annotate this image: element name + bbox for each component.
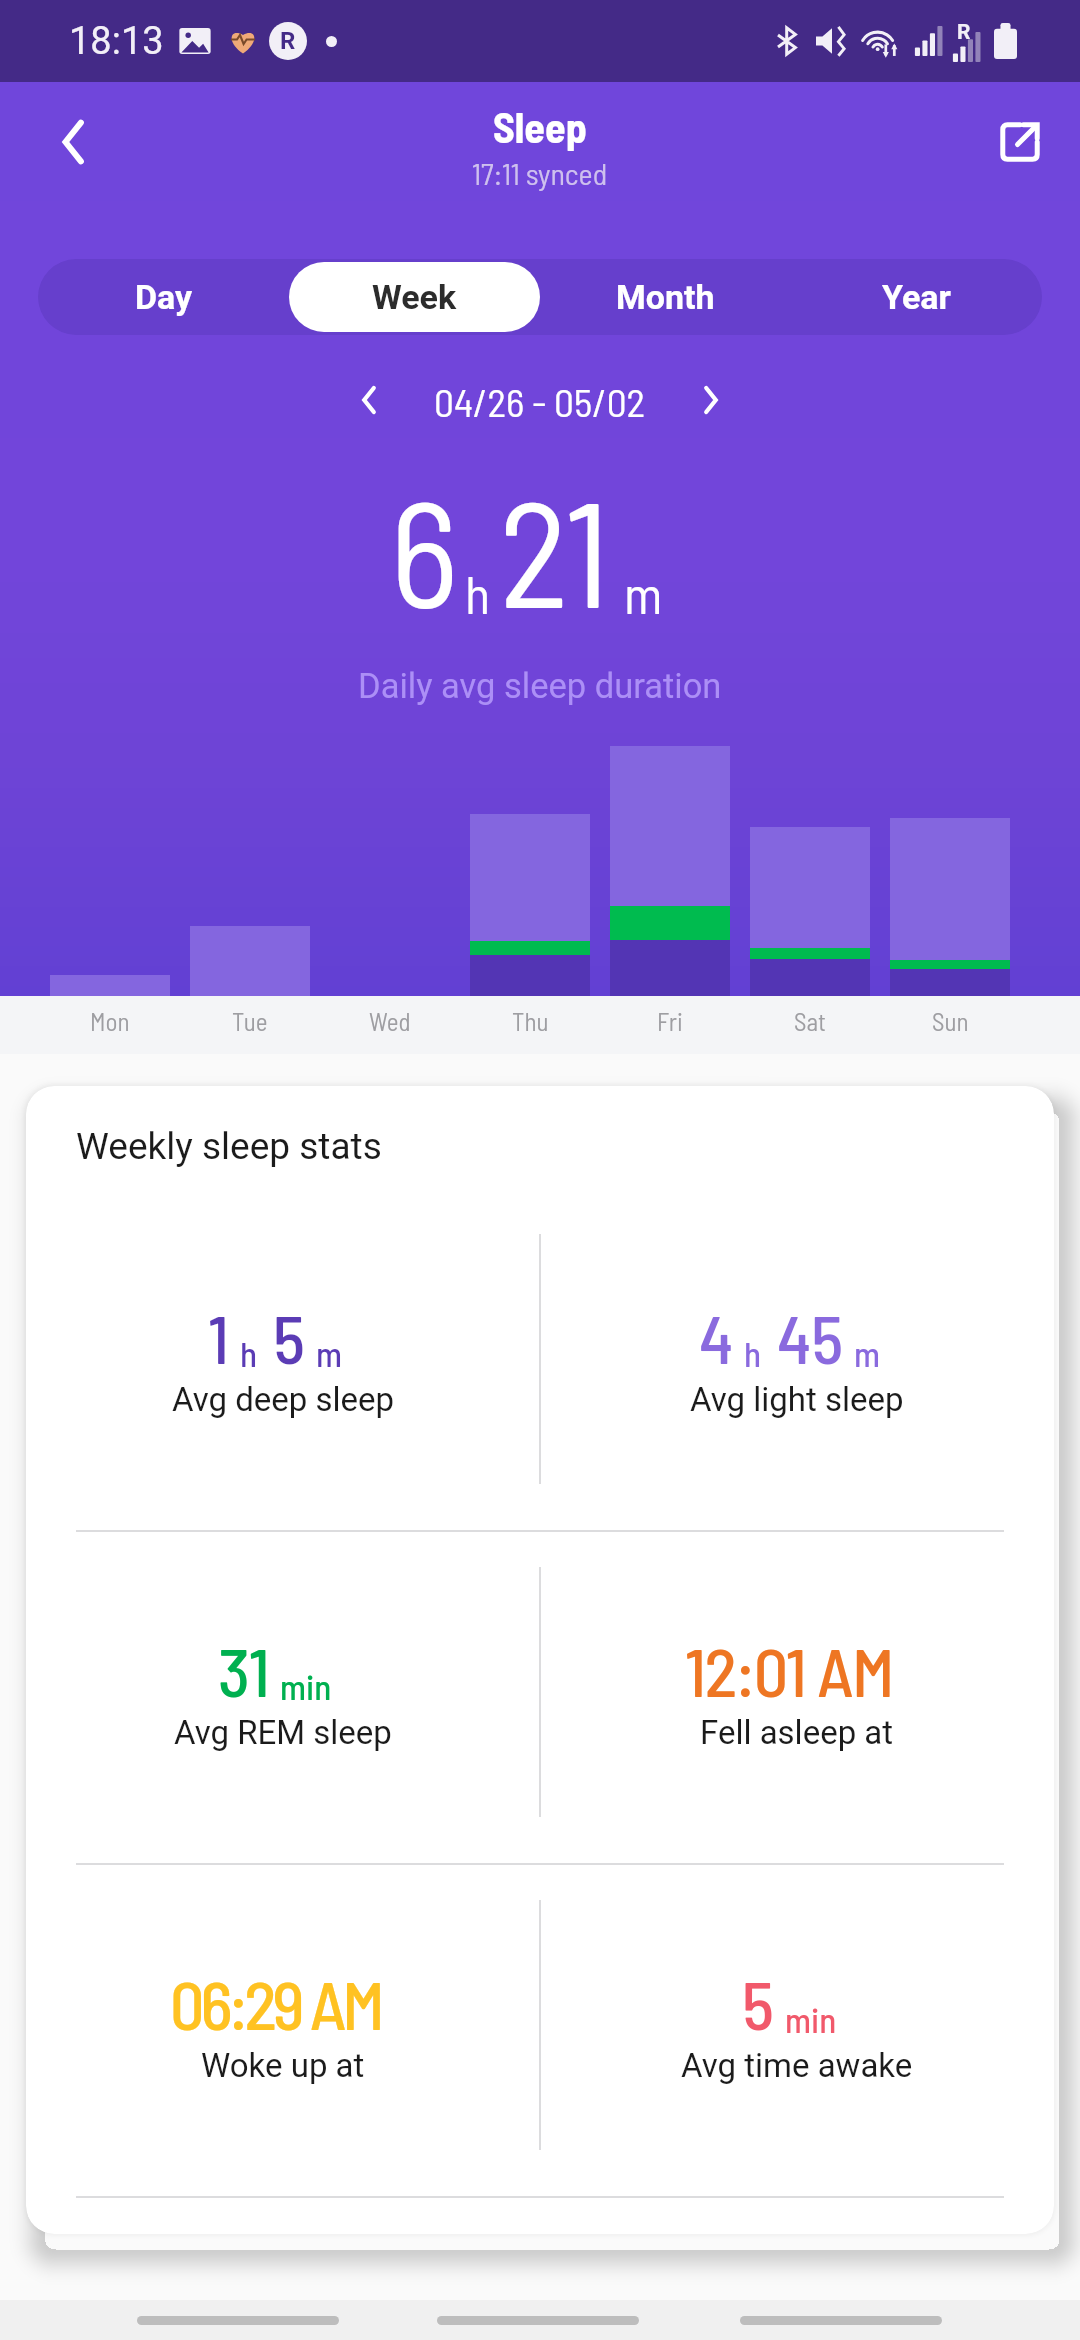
staticText: Sleep	[493, 101, 588, 151]
button[interactable]: Next week	[676, 365, 746, 435]
staticText: 17:11 synced	[472, 155, 608, 191]
button[interactable]: Week	[289, 262, 540, 332]
button[interactable]: 31	[26, 1532, 540, 1863]
button[interactable]: Recent apps	[137, 2300, 339, 2340]
button[interactable]: Home	[437, 2300, 639, 2340]
button[interactable]: 12:01 AM	[540, 1532, 1054, 1863]
staticText: m	[624, 562, 663, 624]
staticText: 4	[699, 1296, 734, 1378]
button[interactable]: Back	[28, 97, 118, 187]
staticText: 6	[390, 460, 459, 638]
staticText: Wed	[369, 1006, 411, 1036]
button[interactable]: Month	[540, 262, 791, 332]
staticText: 1	[208, 1296, 230, 1378]
staticText: 06:29 AM	[170, 1962, 381, 2044]
staticText: Thu	[512, 1006, 549, 1036]
staticText: Avg light sleep	[690, 1380, 904, 1419]
staticText: Month	[616, 277, 715, 317]
staticText: min	[280, 1665, 332, 1707]
staticText: m	[316, 1332, 342, 1374]
button[interactable]: Back	[740, 2300, 942, 2340]
staticText: Sun	[932, 1006, 969, 1036]
staticText: 5	[742, 1962, 775, 2044]
button[interactable]: Year	[791, 262, 1042, 332]
staticText: 31	[218, 1629, 270, 1711]
staticText: Avg REM sleep	[174, 1713, 392, 1752]
staticText: 45	[777, 1296, 844, 1378]
staticText: Year	[882, 277, 951, 317]
staticText: Weekly sleep stats	[76, 1125, 382, 1168]
button[interactable]: 5	[540, 1865, 1054, 2196]
staticText: 04/26 - 05/02	[434, 377, 646, 424]
staticText: Day	[135, 277, 193, 317]
staticText: 12:01 AM	[685, 1629, 893, 1711]
staticText: h	[240, 1332, 258, 1374]
staticText: Avg deep sleep	[172, 1380, 395, 1419]
staticText: h	[465, 562, 491, 624]
staticText: Avg time awake	[681, 2046, 913, 2085]
staticText: h	[744, 1332, 762, 1374]
staticText: Fell asleep at	[700, 1713, 894, 1752]
staticText: Daily avg sleep duration	[358, 666, 722, 706]
staticText: R	[957, 20, 971, 45]
button[interactable]: 1	[26, 1199, 540, 1530]
button[interactable]: Open in new	[975, 97, 1065, 187]
staticText: min	[785, 1998, 837, 2040]
staticText: R	[280, 27, 296, 55]
staticText: Mon	[90, 1006, 130, 1036]
button[interactable]: Previous week	[334, 365, 404, 435]
staticText: Tue	[232, 1006, 268, 1036]
button[interactable]: Day	[38, 262, 289, 332]
staticText: m	[854, 1332, 880, 1374]
staticText: 5	[273, 1296, 306, 1378]
button[interactable]: 06:29 AM	[26, 1865, 540, 2196]
staticText: 21	[499, 460, 610, 638]
staticText: Sat	[794, 1006, 826, 1036]
button[interactable]: 4	[540, 1199, 1054, 1530]
staticText: Fri	[657, 1006, 683, 1036]
staticText: Week	[372, 277, 457, 317]
staticText: 18:13	[69, 19, 164, 64]
staticText: Woke up at	[201, 2046, 365, 2085]
